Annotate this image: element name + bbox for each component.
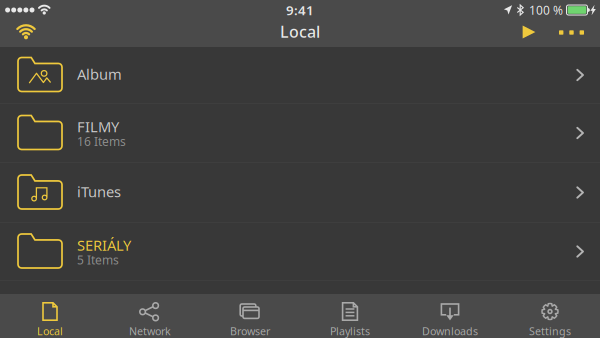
staticText: 100 % <box>529 2 563 18</box>
staticText: SERIÁLY <box>77 235 131 255</box>
staticText: Album <box>77 64 122 84</box>
staticText: FILMY <box>77 117 119 136</box>
button[interactable]: FILMY <box>0 104 600 162</box>
button[interactable]: Local <box>0 294 100 338</box>
staticText: 16 Items <box>77 133 126 149</box>
staticText: Network <box>129 324 171 338</box>
button[interactable]: Playlists <box>300 294 400 338</box>
button[interactable]: Settings <box>500 294 600 338</box>
button[interactable]: Wi-Fi <box>0 20 47 47</box>
staticText: Downloads <box>422 324 478 338</box>
staticText: Local <box>37 324 63 338</box>
staticText: 5 Items <box>77 252 119 268</box>
button[interactable]: More options <box>551 20 592 47</box>
button[interactable]: Play <box>507 20 551 47</box>
staticText: Playlists <box>330 324 370 338</box>
staticText: 9:41 <box>286 1 314 19</box>
staticText: Local <box>280 21 320 42</box>
staticText: iTunes <box>77 182 121 201</box>
button[interactable]: SERIÁLY <box>0 223 600 280</box>
staticText: Settings <box>529 324 571 338</box>
button[interactable]: Network <box>100 294 200 338</box>
button[interactable]: Downloads <box>400 294 500 338</box>
button[interactable]: Browser <box>200 294 300 338</box>
button[interactable]: Album <box>0 47 600 103</box>
staticText: Browser <box>230 324 270 338</box>
button[interactable]: iTunes <box>0 163 600 222</box>
